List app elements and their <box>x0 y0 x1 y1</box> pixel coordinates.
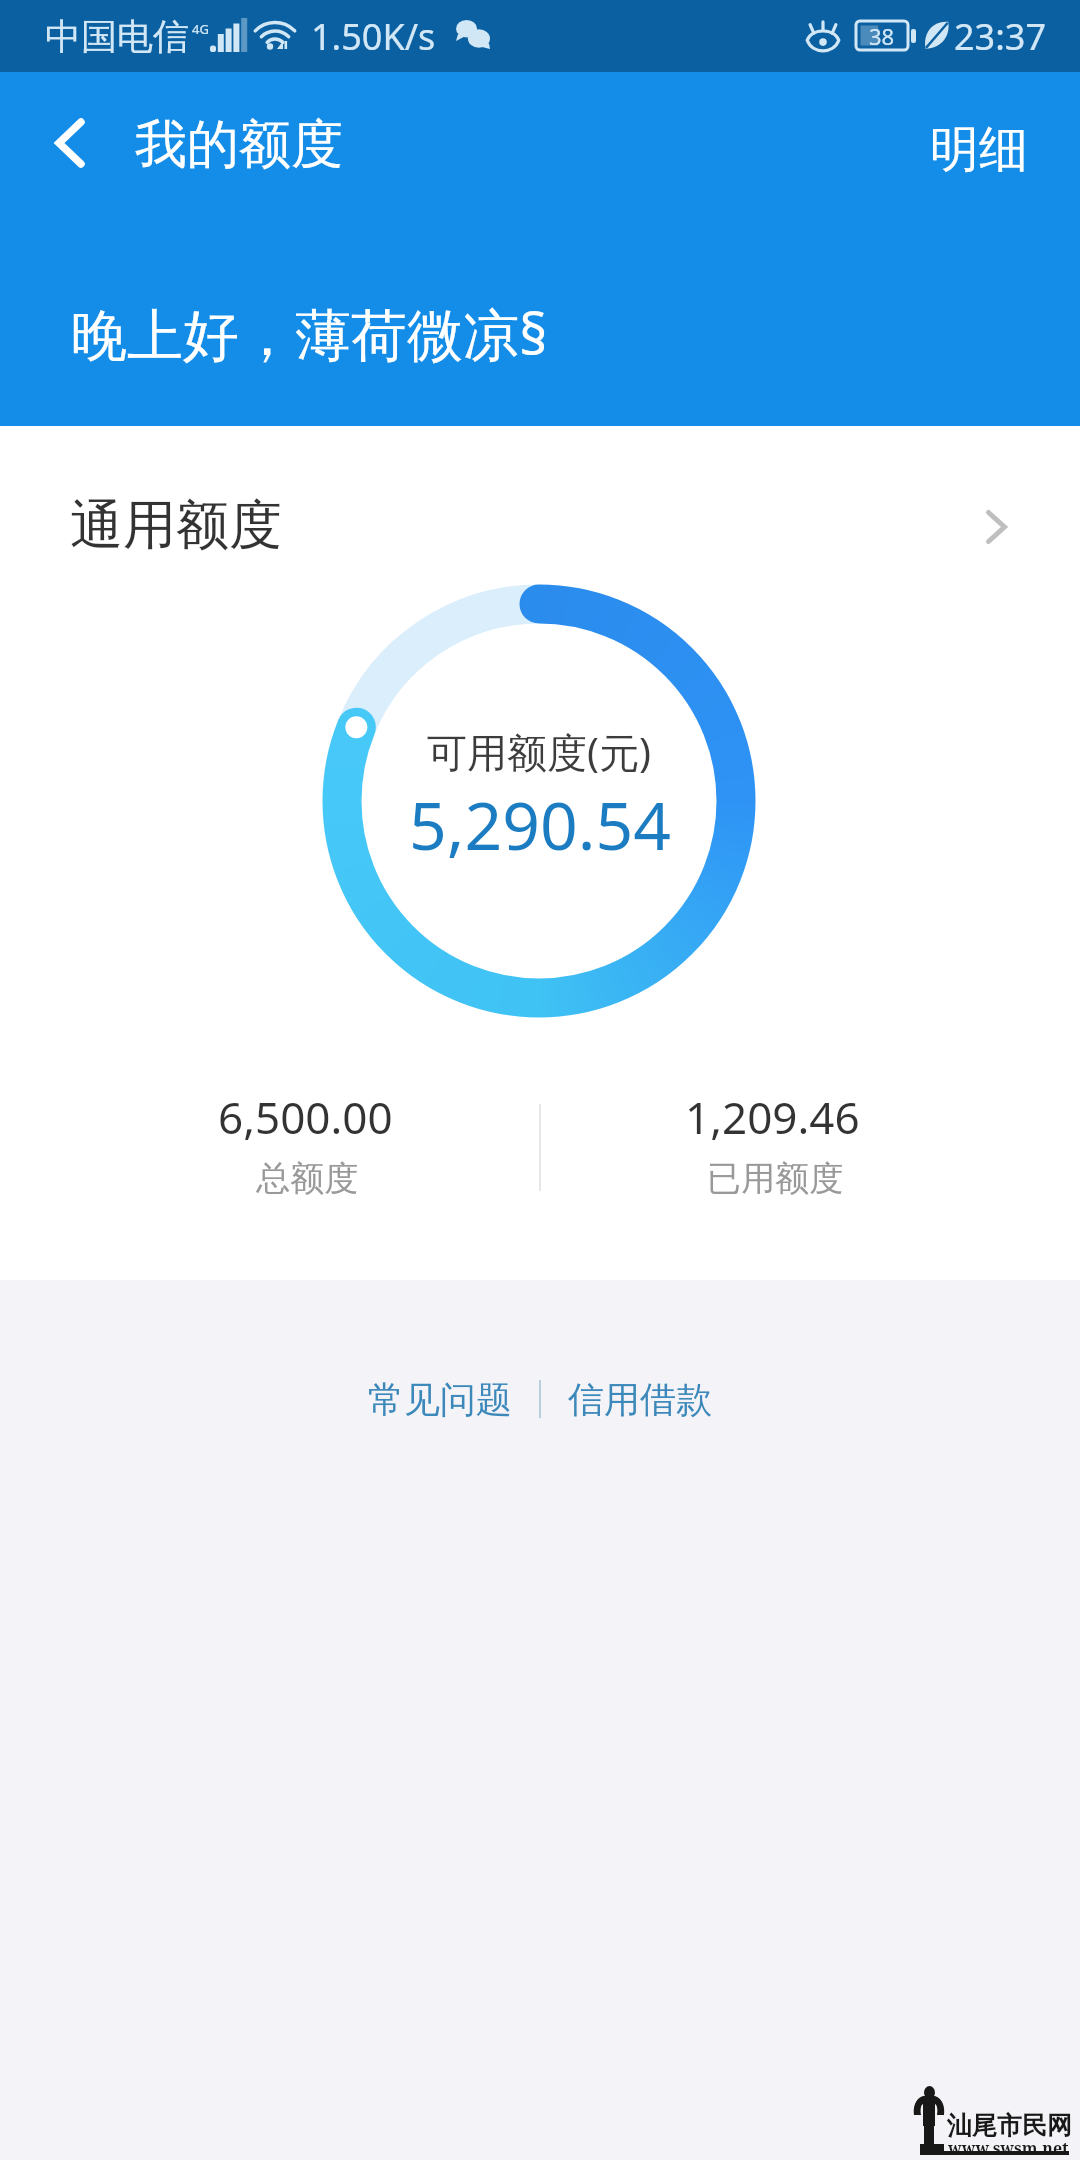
staticText: 1,209.46 <box>685 1087 860 1147</box>
staticText: 中国电信 <box>45 14 189 59</box>
staticText: 已用额度 <box>707 1157 843 1200</box>
staticText: 我的额度 <box>135 112 343 178</box>
staticText: 通用额度 <box>70 492 282 559</box>
staticText: 5,290.54 <box>409 779 671 869</box>
button[interactable]: 返回 <box>0 72 140 214</box>
staticText: 常见问题 <box>368 1377 512 1422</box>
button[interactable]: 信用借款 <box>555 1364 725 1434</box>
staticText: 晚上好，薄荷微凉§ <box>71 295 548 371</box>
staticText: 信用借款 <box>568 1377 712 1422</box>
staticText: 1.50K/s <box>311 12 436 61</box>
button[interactable]: 明细 <box>905 79 1053 221</box>
staticText: 明细 <box>930 119 1028 181</box>
staticText: 汕尾市民网 <box>947 2110 1072 2141</box>
staticText: 23:37 <box>954 12 1047 61</box>
staticText: www.swsm.net <box>948 2137 1069 2159</box>
staticText: 6,500.00 <box>218 1087 393 1147</box>
staticText: 可用额度(元) <box>427 724 651 779</box>
staticText: 总额度 <box>256 1157 358 1200</box>
staticText: 38 <box>869 21 895 50</box>
button[interactable]: 常见问题 <box>355 1364 525 1434</box>
staticText: 4G <box>192 20 209 38</box>
button[interactable]: 通用额度 <box>0 426 1080 596</box>
